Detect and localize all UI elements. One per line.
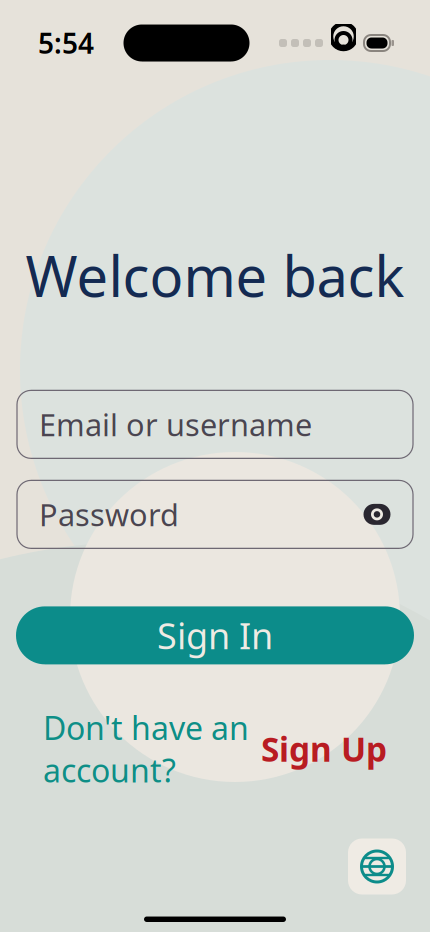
button[interactable]: Password bbox=[17, 480, 413, 548]
staticText: Welcome back bbox=[25, 238, 404, 312]
button[interactable]: Don't have an account? bbox=[43, 706, 249, 791]
staticText: Don't have an account? bbox=[43, 706, 249, 791]
button[interactable]: Sign In bbox=[16, 606, 414, 664]
button[interactable]: Sign Up bbox=[261, 727, 387, 771]
staticText: 5:54 bbox=[38, 24, 94, 62]
button[interactable]: Email or username bbox=[17, 390, 413, 458]
staticText: Password bbox=[39, 494, 179, 535]
staticText: Email or username bbox=[39, 404, 312, 445]
button[interactable]: Change language bbox=[348, 838, 406, 894]
staticText: Sign In bbox=[157, 611, 273, 659]
staticText: Sign Up bbox=[261, 727, 387, 771]
